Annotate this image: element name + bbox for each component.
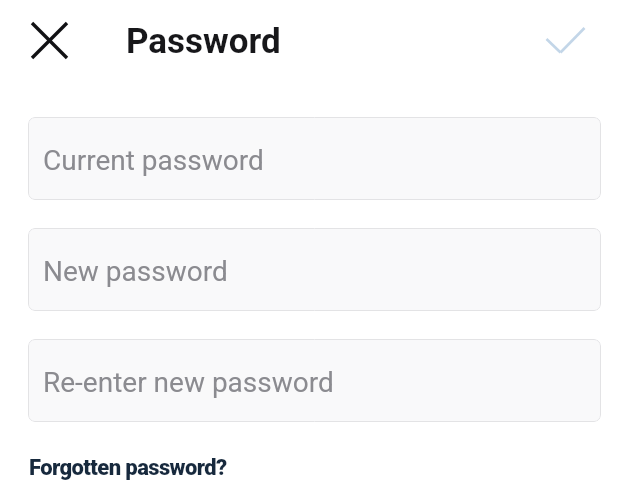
button[interactable]: New password [28,228,601,311]
button[interactable]: Forgotten password? [29,455,227,481]
staticText: Re-enter new password [43,366,334,399]
button[interactable]: Re-enter new password [28,339,601,422]
staticText: New password [43,255,228,288]
staticText: Password [126,21,281,62]
button[interactable]: Close [20,11,78,69]
staticText: Current password [43,144,264,177]
button[interactable]: Current password [28,117,601,200]
staticText: Forgotten password? [29,455,227,481]
button[interactable]: Confirm [541,16,589,64]
